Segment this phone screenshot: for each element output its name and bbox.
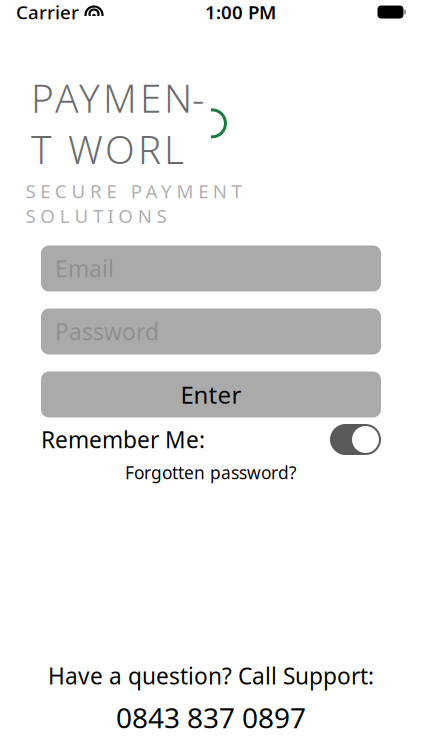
button[interactable]: Password xyxy=(41,308,381,354)
staticText: Email xyxy=(55,253,114,283)
button[interactable]: Enter xyxy=(41,371,381,417)
staticText: SECURE PAYMENT SOLUTIONS xyxy=(26,179,241,228)
staticText: Remember Me: xyxy=(41,424,205,454)
staticText: Password xyxy=(55,316,159,346)
staticText: Carrier xyxy=(16,0,79,24)
staticText: Have a question? Call Support: xyxy=(48,661,374,691)
staticText: Enter xyxy=(180,378,241,410)
staticText: 0843 837 0897 xyxy=(116,699,306,736)
staticText: 1:00 PM xyxy=(205,0,276,24)
staticText: Forgotten password? xyxy=(125,461,297,484)
button[interactable]: Email xyxy=(41,245,381,291)
button[interactable]: Remember Me xyxy=(330,424,381,455)
staticText: PAYMENT WORL xyxy=(31,72,204,175)
button[interactable]: 0843 837 0897 xyxy=(116,699,306,736)
button[interactable]: Forgotten password? xyxy=(101,462,321,482)
